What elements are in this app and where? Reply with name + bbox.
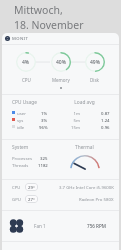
staticText: 29° xyxy=(28,184,35,190)
staticText: 1.24 xyxy=(101,117,110,123)
staticText: 27° xyxy=(28,196,35,202)
staticText: CPU Usage xyxy=(12,99,37,106)
staticText: 1182 xyxy=(38,162,48,168)
staticText: MONIT xyxy=(12,36,29,42)
staticText: GPU xyxy=(12,196,21,202)
staticText: idle xyxy=(17,124,25,130)
staticText: 0.87 xyxy=(101,110,110,116)
staticText: Thermal xyxy=(75,144,94,151)
staticText: Threads xyxy=(12,162,29,168)
staticText: Fan 1 xyxy=(34,223,46,229)
staticText: Mittwoch, xyxy=(14,3,63,17)
other: Monit xyxy=(5,36,10,41)
staticText: 3% xyxy=(41,117,48,123)
staticText: System xyxy=(12,144,29,151)
staticText: Load avg xyxy=(59,99,110,106)
staticText: Memory xyxy=(52,77,70,83)
staticText: CPU xyxy=(22,77,31,83)
staticText: Radeon Pro 580X xyxy=(79,196,114,202)
staticText: 1% xyxy=(41,110,48,116)
staticText: 40% xyxy=(56,59,66,66)
other: Fan xyxy=(9,218,24,234)
staticText: sys xyxy=(17,117,24,123)
staticText: 49% xyxy=(90,59,100,66)
staticText: 15m xyxy=(59,124,80,130)
staticText: Disk xyxy=(90,77,100,83)
staticText: user xyxy=(17,110,26,116)
staticText: 18. November xyxy=(14,18,84,32)
staticText: Processes xyxy=(12,155,32,161)
staticText: 96% xyxy=(39,124,48,130)
staticText: CPU xyxy=(12,184,21,190)
staticText: 4% xyxy=(22,59,30,66)
staticText: 325 xyxy=(40,155,48,161)
staticText: 1m xyxy=(59,110,80,116)
staticText: 3.7 GHz Intel Core i5-9600K xyxy=(59,184,114,190)
staticText: 756 RPM xyxy=(87,223,107,229)
staticText: 0.96 xyxy=(101,124,110,130)
staticText: 5m xyxy=(59,117,80,123)
